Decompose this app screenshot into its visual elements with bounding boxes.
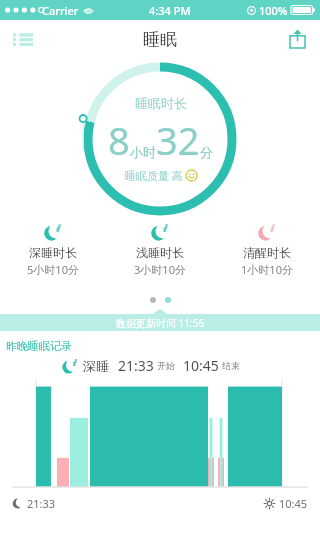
staticText: 清醒时长 [243, 245, 291, 260]
staticText: 结束 [222, 360, 240, 371]
staticText: 深睡 [83, 358, 109, 374]
button[interactable]: Share [280, 22, 314, 56]
staticText: 4:34 PM [149, 3, 191, 18]
staticText: 小时 [130, 144, 156, 160]
staticText: 10:45 [183, 356, 219, 375]
staticText: 睡眠时长 [135, 95, 187, 111]
staticText: Carrier [42, 3, 79, 18]
staticText: 昨晚睡眠记录 [6, 339, 72, 353]
staticText: 1小时10分 [241, 262, 293, 277]
staticText: 开始 [157, 360, 175, 371]
button[interactable]: Menu [6, 22, 40, 56]
staticText: 5小时10分 [27, 262, 79, 277]
button[interactable]: 深睡时长 [0, 222, 106, 279]
staticText: 睡眠质量 高 [125, 168, 183, 183]
staticText: 10:45 [279, 496, 308, 511]
staticText: 21:33 [118, 356, 154, 375]
staticText: 深睡时长 [29, 245, 77, 260]
staticText: 32 [156, 114, 200, 166]
staticText: 数据更新时间 11:56 [116, 316, 205, 330]
button[interactable]: 清醒时长 [213, 222, 320, 279]
staticText: 8 [108, 114, 130, 166]
staticText: 浅睡时长 [136, 245, 184, 260]
staticText: 3小时10分 [134, 262, 186, 277]
button[interactable]: 浅睡时长 [106, 222, 213, 279]
staticText: 睡眠 [143, 29, 177, 50]
staticText: 分 [200, 144, 213, 160]
staticText: 21:33 [27, 496, 56, 511]
staticText: 100% [259, 3, 288, 18]
